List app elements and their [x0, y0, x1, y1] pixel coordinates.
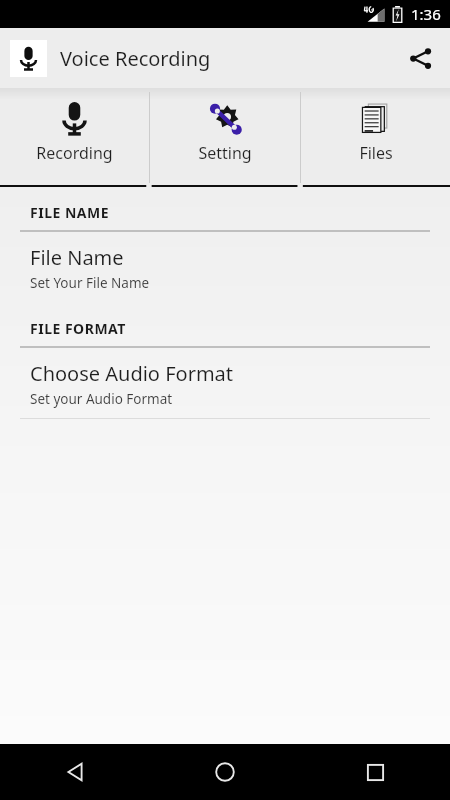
button[interactable]: Recent apps	[300, 744, 450, 800]
button[interactable]: Setting	[150, 88, 300, 187]
staticText: Voice Recording	[60, 45, 211, 72]
button[interactable]: Recording	[0, 88, 149, 187]
staticText: FILE FORMAT	[30, 319, 126, 338]
staticText: Set your Audio Format	[30, 390, 173, 408]
button[interactable]: Choose Audio Format	[0, 348, 450, 418]
staticText: Setting	[198, 142, 252, 164]
button[interactable]: Home	[150, 744, 300, 800]
staticText: 1:36	[411, 4, 441, 24]
staticText: FILE NAME	[30, 203, 110, 222]
staticText: Choose Audio Format	[30, 360, 234, 387]
staticText: Recording	[36, 142, 113, 164]
staticText: Set Your File Name	[30, 274, 150, 292]
button[interactable]: File Name	[0, 232, 450, 302]
button[interactable]: Files	[301, 88, 450, 187]
staticText: File Name	[30, 244, 124, 271]
staticText: Files	[359, 142, 393, 164]
button[interactable]: Back	[0, 744, 150, 800]
button[interactable]: Share	[396, 34, 444, 82]
